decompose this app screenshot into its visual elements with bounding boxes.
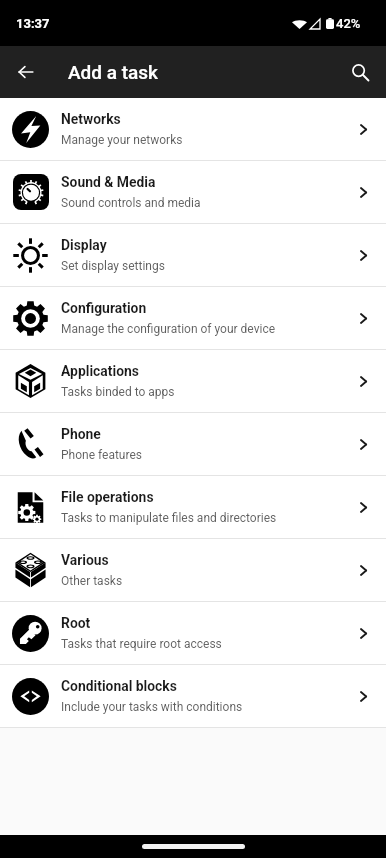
button[interactable]: Back — [0, 46, 52, 98]
button[interactable]: Various — [0, 539, 386, 601]
staticText: Phone features — [61, 448, 142, 462]
staticText: Manage the configuration of your device — [61, 322, 276, 336]
button[interactable]: Applications — [0, 350, 386, 412]
staticText: Tasks that require root access — [61, 637, 222, 651]
staticText: Phone — [61, 426, 101, 442]
button[interactable]: Conditional blocks — [0, 665, 386, 727]
staticText: Sound & Media — [61, 174, 156, 190]
button[interactable]: Display — [0, 224, 386, 286]
button[interactable]: File operations — [0, 476, 386, 538]
staticText: 13:37 — [16, 16, 50, 31]
staticText: Networks — [61, 111, 121, 127]
staticText: Tasks to manipulate files and directorie… — [61, 511, 277, 525]
staticText: Set display settings — [61, 259, 165, 273]
staticText: Root — [61, 615, 91, 631]
button[interactable]: Root — [0, 602, 386, 664]
staticText: Sound controls and media — [61, 196, 201, 210]
button[interactable]: Configuration — [0, 287, 386, 349]
button[interactable]: Search — [334, 46, 386, 98]
staticText: File operations — [61, 489, 154, 505]
staticText: Include your tasks with conditions — [61, 700, 243, 714]
staticText: 42% — [336, 16, 361, 31]
staticText: Display — [61, 237, 107, 253]
staticText: Applications — [61, 363, 139, 379]
staticText: Conditional blocks — [61, 678, 177, 694]
button[interactable]: Phone — [0, 413, 386, 475]
staticText: Various — [61, 552, 109, 568]
staticText: Tasks binded to apps — [61, 385, 175, 399]
button[interactable]: Networks — [0, 98, 386, 160]
button[interactable]: Sound & Media — [0, 161, 386, 223]
staticText: Manage your networks — [61, 133, 183, 147]
staticText: Configuration — [61, 300, 147, 316]
staticText: Add a task — [68, 61, 158, 83]
staticText: Other tasks — [61, 574, 123, 588]
